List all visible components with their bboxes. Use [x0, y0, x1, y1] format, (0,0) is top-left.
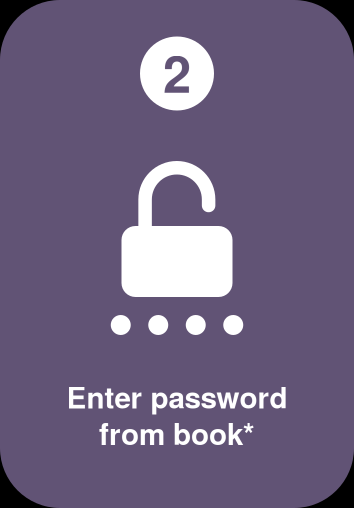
button[interactable]: Step 2: Enter password from book	[0, 0, 354, 508]
staticText: from book*	[99, 412, 255, 454]
staticText: Enter password	[66, 375, 287, 418]
staticText: 2	[163, 36, 191, 108]
